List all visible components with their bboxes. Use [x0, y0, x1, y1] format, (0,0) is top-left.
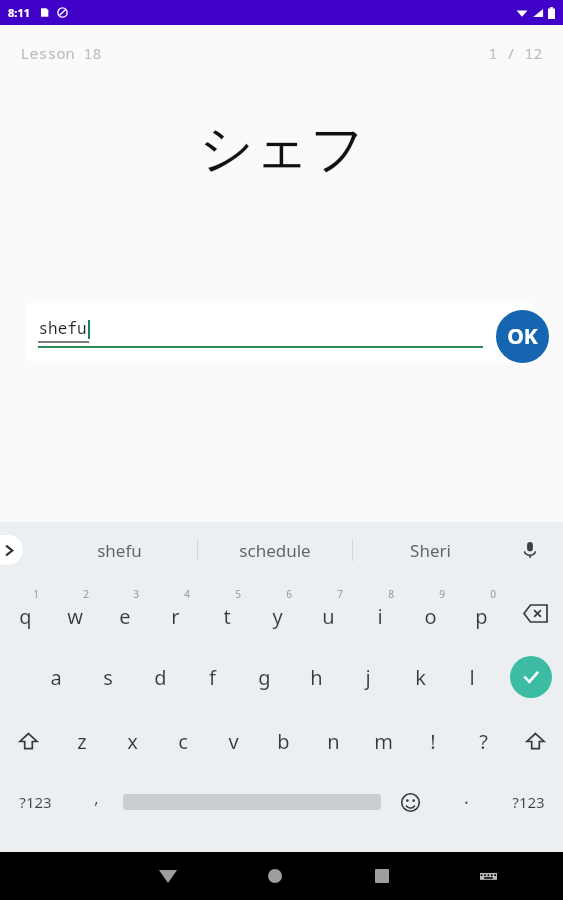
staticText: 5 — [235, 587, 241, 601]
button[interactable]: Home — [221, 852, 328, 900]
staticText: h — [310, 664, 323, 691]
button[interactable]: h — [290, 645, 342, 709]
staticText: , — [94, 787, 99, 809]
staticText: y — [272, 603, 283, 630]
staticText: 3 — [133, 587, 139, 601]
button[interactable]: Recent apps — [328, 852, 435, 900]
button[interactable]: Backspace — [507, 581, 563, 645]
button[interactable]: Switch keyboard — [435, 852, 542, 900]
staticText: OK — [507, 322, 538, 351]
button[interactable]: n — [308, 709, 358, 773]
button[interactable]: Voice input — [513, 533, 547, 567]
button[interactable]: ?123 — [0, 773, 70, 831]
button[interactable]: 9 — [405, 581, 456, 645]
button[interactable]: 0 — [456, 581, 507, 645]
staticText: j — [365, 664, 371, 691]
button[interactable]: 6 — [252, 581, 303, 645]
button[interactable]: l — [446, 645, 498, 709]
button[interactable]: shefu — [42, 529, 197, 571]
staticText: p — [475, 603, 488, 630]
button[interactable]: 8 — [354, 581, 405, 645]
staticText: ! — [430, 728, 436, 755]
staticText: o — [424, 603, 437, 630]
button[interactable]: , — [70, 773, 123, 831]
button[interactable]: Shift — [508, 709, 563, 773]
button[interactable]: shefu — [26, 301, 535, 363]
staticText: g — [258, 664, 271, 691]
button[interactable]: Sheri — [353, 529, 507, 571]
staticText: w — [67, 603, 83, 630]
staticText: r — [171, 603, 180, 630]
staticText: 2 — [83, 587, 89, 601]
button[interactable]: Expand suggestions — [0, 535, 23, 565]
staticText: 7 — [337, 587, 343, 601]
staticText: x — [127, 728, 138, 755]
button[interactable]: 5 — [201, 581, 252, 645]
staticText: b — [277, 728, 290, 755]
button[interactable]: s — [82, 645, 134, 709]
button[interactable]: · — [440, 773, 493, 831]
staticText: 8:11 — [8, 5, 30, 20]
button[interactable]: Enter — [510, 656, 552, 698]
button[interactable]: schedule — [198, 529, 352, 571]
button[interactable]: v — [208, 709, 258, 773]
button[interactable]: ? — [458, 709, 508, 773]
staticText: ?123 — [512, 792, 545, 812]
staticText: · — [464, 790, 469, 815]
staticText: ? — [479, 728, 488, 755]
staticText: 0 — [490, 587, 496, 601]
staticText: z — [77, 728, 87, 755]
staticText: i — [377, 603, 383, 630]
button[interactable]: Shift — [0, 709, 56, 773]
button[interactable]: ! — [408, 709, 458, 773]
button[interactable]: 1 — [0, 581, 50, 645]
button[interactable]: Hide keyboard — [114, 852, 221, 900]
staticText: q — [19, 603, 32, 630]
staticText: m — [374, 728, 393, 755]
staticText: Sheri — [410, 539, 451, 562]
button[interactable]: 4 — [150, 581, 201, 645]
staticText: c — [178, 728, 188, 755]
staticText: k — [415, 664, 426, 691]
button[interactable]: 7 — [303, 581, 354, 645]
button[interactable]: m — [358, 709, 408, 773]
staticText: schedule — [239, 539, 311, 562]
staticText: e — [119, 603, 131, 630]
staticText: a — [50, 664, 62, 691]
staticText: t — [223, 603, 231, 630]
button[interactable]: Emoji — [381, 773, 440, 831]
staticText: l — [469, 664, 475, 691]
staticText: 9 — [439, 587, 445, 601]
button[interactable]: 3 — [100, 581, 150, 645]
staticText: f — [209, 664, 216, 691]
button[interactable]: ?123 — [493, 773, 563, 831]
staticText: 4 — [184, 587, 190, 601]
staticText: d — [154, 664, 167, 691]
staticText: n — [327, 728, 340, 755]
staticText: シェフ — [199, 115, 365, 183]
button[interactable]: j — [342, 645, 394, 709]
button[interactable]: g — [238, 645, 290, 709]
button[interactable]: c — [158, 709, 208, 773]
button[interactable]: x — [107, 709, 158, 773]
staticText: 1 — [33, 587, 39, 601]
staticText: Lesson 18 — [20, 43, 102, 63]
staticText: ?123 — [19, 792, 52, 812]
button[interactable]: d — [134, 645, 186, 709]
staticText: shefu — [38, 317, 87, 339]
button[interactable]: f — [186, 645, 238, 709]
button[interactable]: 2 — [50, 581, 100, 645]
staticText: 8 — [388, 587, 394, 601]
staticText: u — [322, 603, 335, 630]
button[interactable]: z — [56, 709, 107, 773]
staticText: v — [228, 728, 239, 755]
staticText: shefu — [97, 539, 142, 562]
button[interactable]: b — [258, 709, 308, 773]
staticText: s — [103, 664, 113, 691]
staticText: 1 / 12 — [488, 43, 543, 63]
staticText: 6 — [286, 587, 292, 601]
button[interactable]: a — [30, 645, 82, 709]
button[interactable]: OK — [496, 310, 549, 363]
button[interactable]: k — [394, 645, 446, 709]
